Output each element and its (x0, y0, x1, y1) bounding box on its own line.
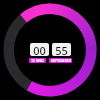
staticText: 00 (33, 43, 46, 56)
staticText: 55 (55, 43, 68, 56)
staticText: 12 WED (31, 58, 44, 63)
staticText: SEPTEMBER (51, 58, 71, 63)
